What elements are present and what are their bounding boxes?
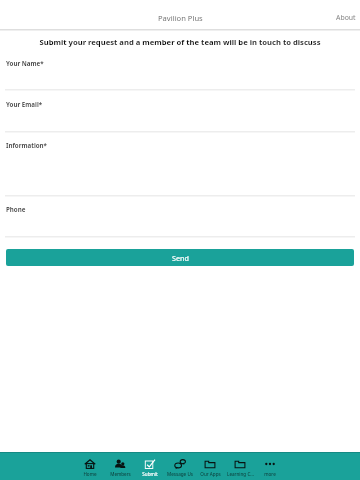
button[interactable]: Home	[75, 453, 105, 480]
button[interactable]: Learning C...	[225, 453, 255, 480]
staticText: Information*	[6, 141, 47, 149]
button[interactable]: About	[336, 13, 356, 22]
staticText: Message Us	[167, 471, 193, 477]
staticText: Learning C...	[227, 471, 254, 477]
button[interactable]: Send	[6, 249, 354, 266]
button[interactable]: Submit	[135, 453, 165, 480]
staticText: Members	[110, 471, 131, 477]
button[interactable]: more	[255, 453, 285, 480]
staticText: more	[264, 471, 276, 477]
staticText: Your Email*	[6, 100, 43, 108]
staticText: Phone	[6, 205, 26, 213]
staticText: Home	[83, 471, 97, 477]
staticText: Submit	[142, 471, 158, 477]
button[interactable]: Our Apps	[195, 453, 225, 480]
button[interactable]: Members	[105, 453, 135, 480]
staticText: About	[336, 13, 356, 22]
staticText: Your Name*	[6, 59, 44, 67]
staticText: Send	[172, 253, 189, 263]
staticText: Pavilion Plus	[158, 13, 203, 23]
staticText: Submit your request and a member of the …	[6, 37, 354, 47]
staticText: Our Apps	[200, 471, 221, 477]
button[interactable]: Message Us	[165, 453, 195, 480]
